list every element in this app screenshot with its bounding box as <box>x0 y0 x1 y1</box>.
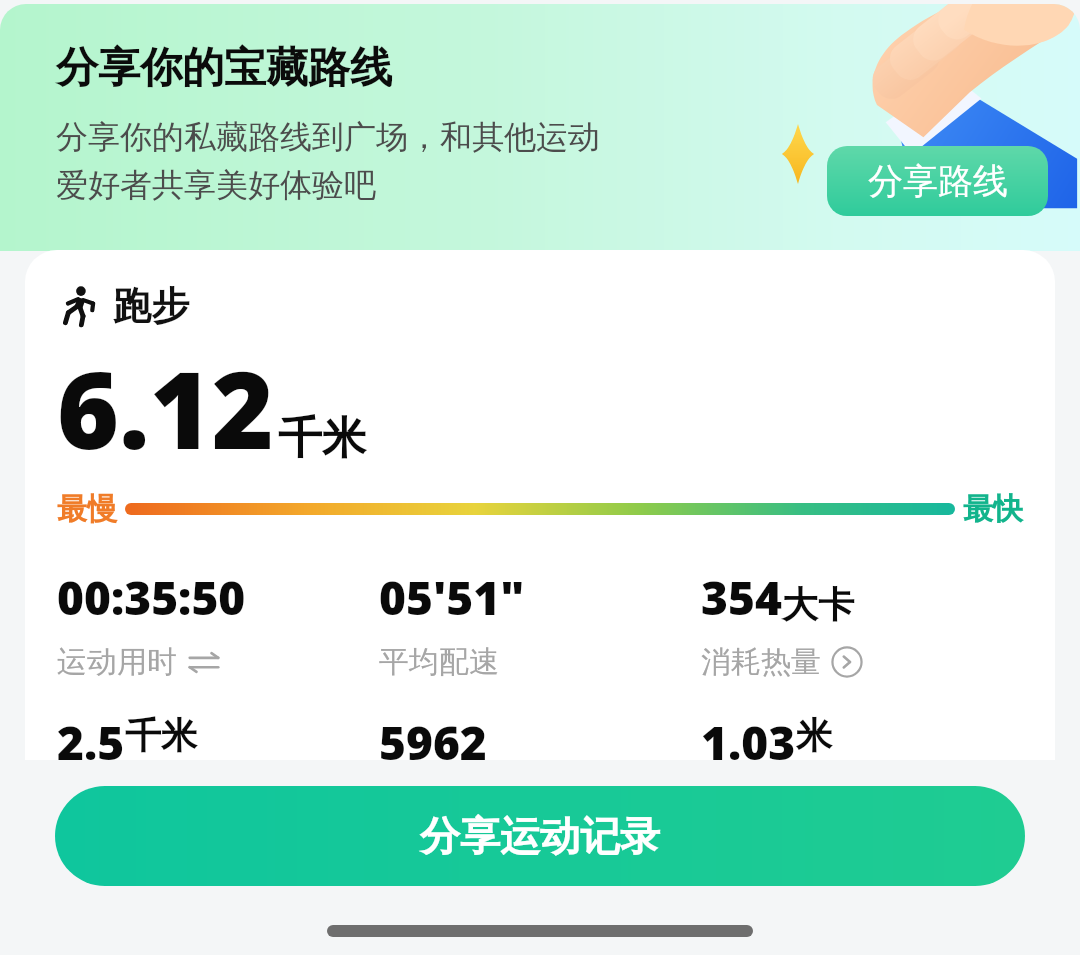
staticText: 5962 <box>379 711 487 760</box>
staticText: 05'51" <box>379 566 525 629</box>
staticText: 分享你的私藏路线到广场，和其他运动 爱好者共享美好体验吧 <box>56 117 600 205</box>
other: Running <box>57 285 99 327</box>
staticText: 大卡 <box>782 582 854 627</box>
staticText: 354 <box>701 566 782 629</box>
staticText: 米 <box>796 713 832 758</box>
staticText: 1.03 <box>701 711 796 760</box>
other: Calories detail <box>831 646 863 678</box>
button[interactable]: 05'51" <box>379 566 701 681</box>
staticText: 运动用时 <box>57 643 177 681</box>
button[interactable]: 1.03 <box>701 711 1023 760</box>
staticText: 千米 <box>278 411 366 466</box>
staticText: 跑步 <box>113 282 189 330</box>
staticText: 6.12 <box>57 336 274 480</box>
button[interactable]: 分享运动记录 <box>55 786 1025 886</box>
button[interactable]: 分享路线 <box>0 4 1080 251</box>
staticText: 分享运动记录 <box>420 811 660 861</box>
other: Swap units <box>187 649 221 675</box>
staticText: 00:35:50 <box>57 566 246 629</box>
staticText: 千米 <box>125 713 197 758</box>
staticText: 分享你的宝藏路线 <box>56 42 392 95</box>
button[interactable]: 5962 <box>379 711 701 760</box>
staticText: 最快 <box>963 490 1023 528</box>
staticText: 2.5 <box>57 711 125 760</box>
staticText: 消耗热量 <box>701 643 821 681</box>
button[interactable]: 00:35:50 <box>57 566 379 681</box>
staticText: 最慢 <box>57 490 117 528</box>
button[interactable]: 分享路线 <box>827 146 1048 216</box>
staticText: 分享路线 <box>868 159 1008 203</box>
button[interactable]: 2.5 <box>57 711 379 760</box>
button[interactable]: 354 <box>701 566 1023 681</box>
staticText: 平均配速 <box>379 643 499 681</box>
